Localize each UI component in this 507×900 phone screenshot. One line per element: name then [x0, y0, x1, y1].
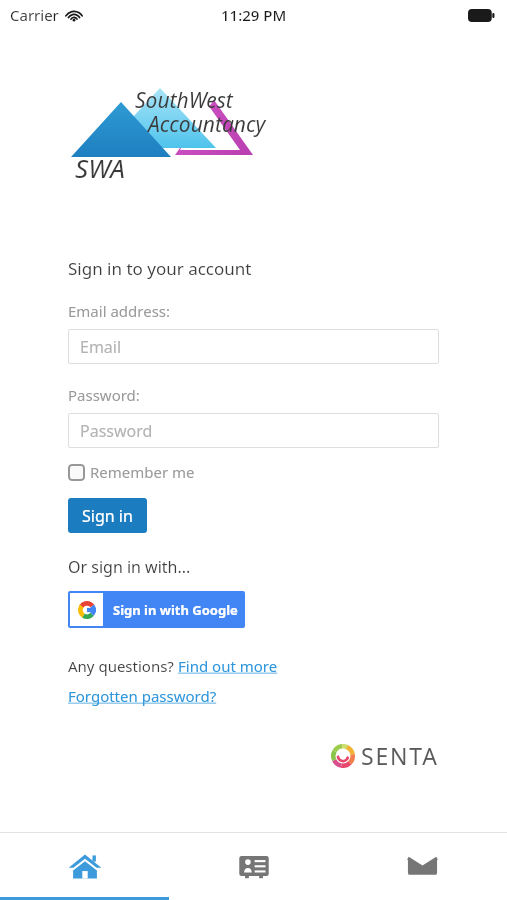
staticText: Password:: [68, 385, 140, 405]
button[interactable]: Forgotten password?: [68, 686, 217, 706]
button[interactable]: Home: [0, 833, 169, 900]
staticText: Email: [80, 336, 122, 358]
button[interactable]: Find out more: [178, 656, 278, 676]
staticText: Forgotten password?: [68, 686, 217, 706]
button[interactable]: Sign in: [68, 498, 147, 533]
staticText: Carrier: [10, 5, 59, 25]
staticText: Find out more: [178, 656, 278, 676]
button[interactable]: Email: [68, 329, 439, 364]
staticText: Sign in with Google: [113, 601, 238, 619]
staticText: Or sign in with...: [68, 556, 191, 578]
staticText: 11:29 PM: [221, 5, 287, 25]
staticText: Accountancy: [148, 110, 266, 139]
button[interactable]: Password: [68, 413, 439, 448]
staticText: Any questions?: [68, 656, 178, 676]
button[interactable]: Sign in with Google: [68, 591, 245, 628]
button[interactable]: Remember me: [68, 462, 195, 482]
staticText: SouthWest: [135, 86, 233, 115]
staticText: SWA: [75, 150, 125, 185]
button[interactable]: Messages: [338, 833, 507, 900]
button[interactable]: Contacts: [169, 833, 338, 900]
staticText: SENTA: [361, 740, 439, 771]
staticText: Sign in: [82, 505, 133, 527]
staticText: Password: [80, 420, 153, 442]
staticText: Remember me: [90, 462, 195, 482]
staticText: Sign in to your account: [68, 257, 252, 280]
button[interactable]: SENTA: [331, 740, 439, 771]
staticText: Email address:: [68, 301, 171, 321]
